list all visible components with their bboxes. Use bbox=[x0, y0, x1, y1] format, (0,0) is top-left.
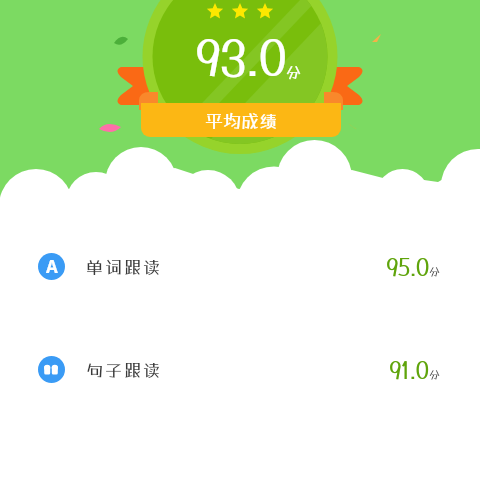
staticText: A bbox=[46, 255, 58, 278]
staticText: 95.0 bbox=[386, 253, 429, 280]
staticText: 93.0 bbox=[195, 29, 286, 86]
staticText: 91.0 bbox=[389, 356, 429, 383]
staticText: 句子跟读 bbox=[86, 360, 162, 380]
staticText: 分 bbox=[286, 63, 302, 81]
staticText: 平均成绩 bbox=[205, 110, 277, 131]
staticText: 单词跟读 bbox=[86, 257, 162, 277]
staticText: 分 bbox=[429, 265, 440, 278]
button[interactable]: 句子跟读 bbox=[19, 327, 461, 412]
staticText: 分 bbox=[429, 368, 440, 381]
button[interactable]: A bbox=[19, 224, 461, 309]
